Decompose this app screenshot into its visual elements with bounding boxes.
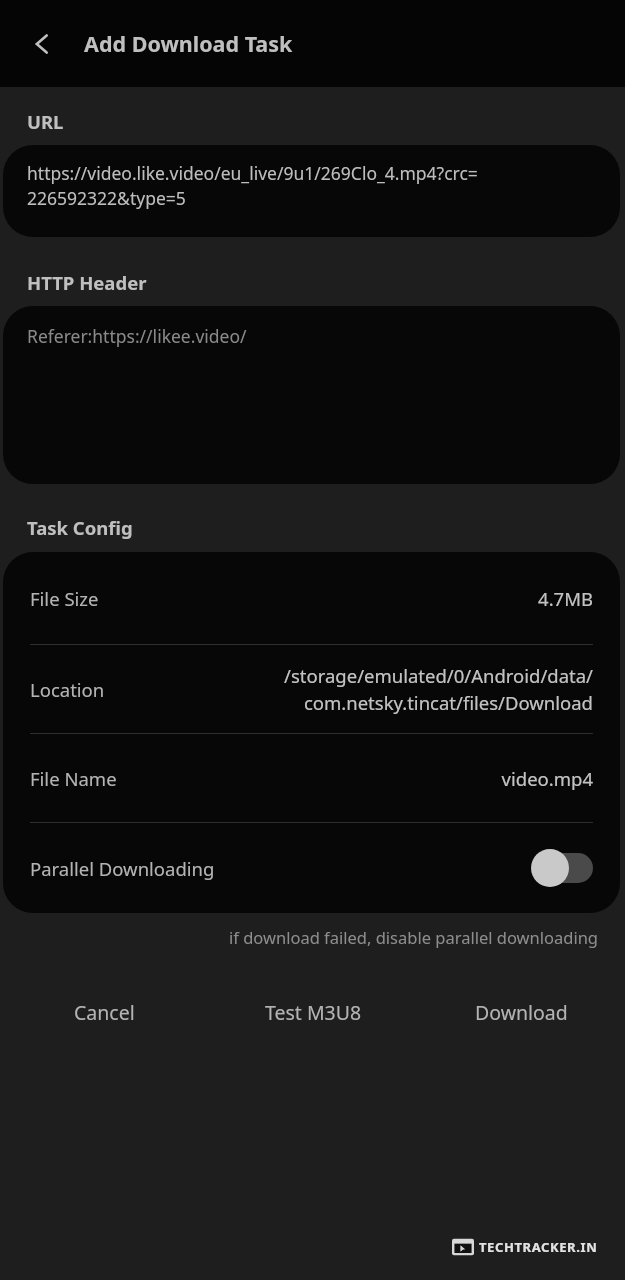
staticText: File Name <box>30 766 117 791</box>
staticText: Download <box>475 999 568 1026</box>
staticText: video.mp4 <box>501 766 593 791</box>
staticText: Referer:https://likee.video/ <box>27 324 247 348</box>
staticText: https://video.like.video/eu_live/9u1/269… <box>27 161 478 211</box>
staticText: TECHTRACKER.IN <box>479 1238 598 1256</box>
button[interactable]: Parallel Downloading <box>3 823 620 913</box>
staticText: Location <box>30 677 105 702</box>
staticText: HTTP Header <box>27 270 147 295</box>
button[interactable]: https://video.like.video/eu_live/9u1/269… <box>3 145 620 237</box>
button[interactable]: File Size <box>3 552 620 644</box>
button[interactable]: File Name <box>3 734 620 822</box>
staticText: Cancel <box>74 999 135 1026</box>
button[interactable]: Location <box>3 645 620 733</box>
button[interactable]: Back <box>18 20 66 68</box>
staticText: if download failed, disable parallel dow… <box>0 926 598 948</box>
staticText: URL <box>27 109 64 134</box>
staticText: Test M3U8 <box>265 999 362 1026</box>
staticText: Task Config <box>27 515 133 540</box>
button[interactable]: Download <box>417 984 625 1040</box>
staticText: Parallel Downloading <box>30 856 215 881</box>
staticText: /storage/emulated/0/Android/data/ com.ne… <box>284 663 593 716</box>
button[interactable]: Referer:https://likee.video/ <box>3 306 620 484</box>
staticText: 4.7MB <box>538 586 593 611</box>
other: Parallel Downloading toggle <box>531 849 593 887</box>
button[interactable]: Cancel <box>0 984 209 1040</box>
staticText: Add Download Task <box>84 29 293 58</box>
staticText: File Size <box>30 586 99 611</box>
button[interactable]: Test M3U8 <box>209 984 417 1040</box>
